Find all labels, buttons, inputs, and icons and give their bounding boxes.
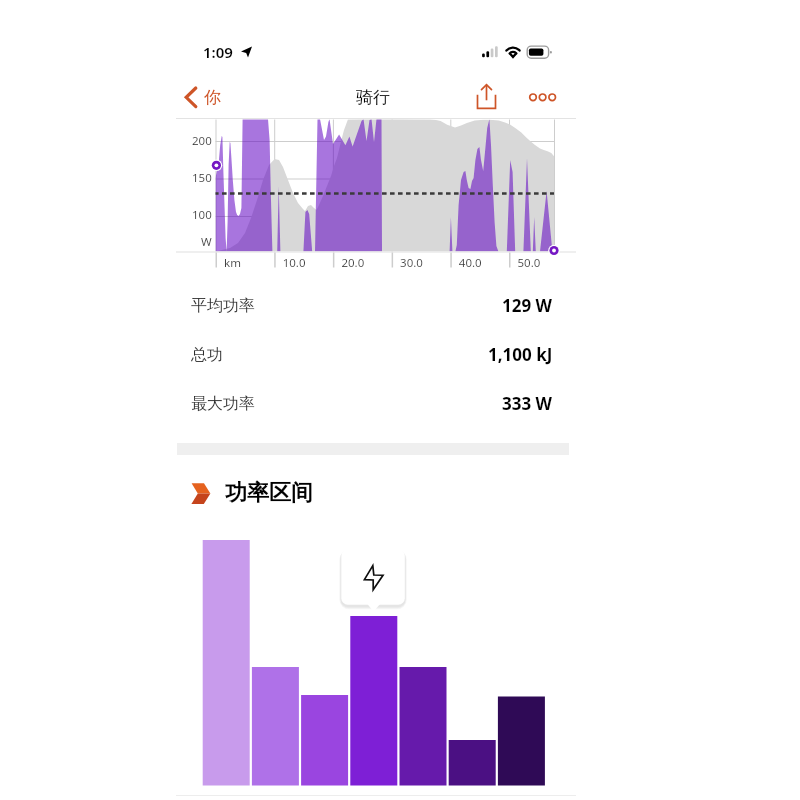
button[interactable]: 最大功率 (176, 379, 576, 428)
staticText: 你 (204, 87, 221, 108)
staticText: 总功 (191, 345, 223, 365)
staticText: 骑行 (356, 87, 390, 108)
staticText: 最大功率 (191, 394, 255, 414)
button[interactable]: 平均功率 (176, 281, 576, 330)
staticText: 1,100 kJ (488, 343, 553, 366)
button[interactable]: 功率区间 (183, 472, 363, 514)
button[interactable]: Share (467, 78, 507, 118)
staticText: 1:09 (203, 42, 233, 62)
button[interactable]: 你 (182, 82, 244, 113)
staticText: 129 W (502, 294, 553, 317)
staticText: 功率区间 (225, 479, 313, 507)
staticText: 平均功率 (191, 296, 255, 316)
button[interactable]: More options (522, 80, 562, 116)
staticText: 333 W (502, 392, 553, 415)
button[interactable]: 总功 (176, 330, 576, 379)
